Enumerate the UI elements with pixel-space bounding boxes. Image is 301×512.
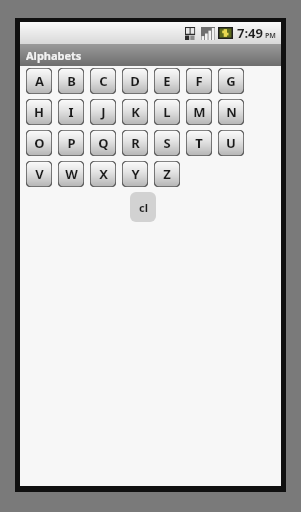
staticText: G: [226, 72, 236, 90]
staticText: P: [67, 134, 76, 152]
staticText: U: [226, 134, 236, 152]
staticText: T: [195, 134, 203, 152]
button[interactable]: X: [90, 161, 116, 187]
staticText: D: [130, 72, 140, 90]
staticText: Z: [163, 165, 171, 183]
button[interactable]: N: [218, 99, 244, 125]
button[interactable]: T: [186, 130, 212, 156]
staticText: 7:49: [237, 24, 263, 42]
staticText: C: [99, 72, 108, 90]
staticText: F: [195, 72, 203, 90]
staticText: S: [163, 134, 171, 152]
button[interactable]: B: [58, 68, 84, 94]
staticText: K: [131, 103, 140, 121]
staticText: V: [35, 165, 44, 183]
button[interactable]: V: [26, 161, 52, 187]
button[interactable]: W: [58, 161, 84, 187]
button[interactable]: D: [122, 68, 148, 94]
button[interactable]: G: [218, 68, 244, 94]
staticText: R: [131, 134, 140, 152]
staticText: M: [193, 103, 206, 121]
button[interactable]: Clear: [130, 192, 156, 222]
button[interactable]: F: [186, 68, 212, 94]
staticText: Q: [98, 134, 109, 152]
button[interactable]: K: [122, 99, 148, 125]
button[interactable]: I: [58, 99, 84, 125]
staticText: cl: [139, 200, 148, 215]
button[interactable]: Z: [154, 161, 180, 187]
button[interactable]: O: [26, 130, 52, 156]
staticText: H: [34, 103, 44, 121]
staticText: X: [99, 165, 108, 183]
staticText: N: [226, 103, 237, 121]
staticText: W: [65, 165, 78, 183]
button[interactable]: A: [26, 68, 52, 94]
button[interactable]: L: [154, 99, 180, 125]
staticText: Alphabets: [26, 48, 82, 63]
button[interactable]: Q: [90, 130, 116, 156]
button[interactable]: H: [26, 99, 52, 125]
staticText: E: [163, 72, 171, 90]
button[interactable]: C: [90, 68, 116, 94]
staticText: L: [163, 103, 171, 121]
staticText: PM: [265, 31, 276, 41]
staticText: B: [67, 72, 76, 90]
button[interactable]: Y: [122, 161, 148, 187]
staticText: I: [68, 103, 74, 121]
button[interactable]: S: [154, 130, 180, 156]
button[interactable]: J: [90, 99, 116, 125]
staticText: J: [101, 103, 106, 121]
button[interactable]: M: [186, 99, 212, 125]
staticText: A: [35, 72, 44, 90]
button[interactable]: P: [58, 130, 84, 156]
button[interactable]: R: [122, 130, 148, 156]
button[interactable]: E: [154, 68, 180, 94]
staticText: Y: [131, 165, 140, 183]
button[interactable]: U: [218, 130, 244, 156]
staticText: O: [34, 134, 45, 152]
